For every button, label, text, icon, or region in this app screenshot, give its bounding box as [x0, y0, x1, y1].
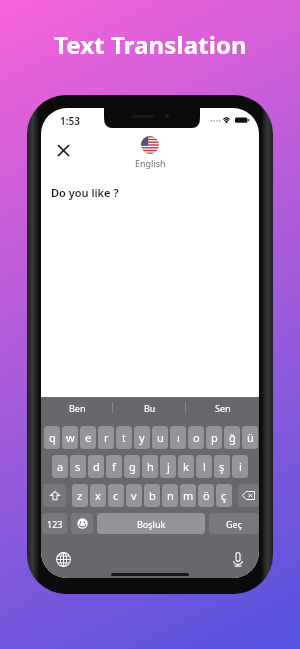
button[interactable]: ü [242, 426, 258, 449]
button[interactable]: k [178, 455, 194, 478]
button[interactable]: Backspace [238, 484, 259, 507]
button[interactable]: ş [214, 455, 230, 478]
staticText: j [167, 459, 170, 474]
staticText: a [57, 459, 64, 474]
staticText: d [93, 459, 100, 474]
button[interactable]: Geç [209, 513, 259, 534]
button[interactable]: v [126, 484, 142, 507]
staticText: c [113, 488, 119, 503]
button[interactable]: Sen [186, 397, 259, 418]
button[interactable]: c [108, 484, 124, 507]
button[interactable]: x [90, 484, 106, 507]
staticText: ş [219, 459, 225, 474]
button[interactable]: Change language [54, 551, 72, 567]
staticText: Geç [226, 518, 242, 530]
staticText: o [193, 430, 200, 445]
button[interactable]: p [206, 426, 222, 449]
staticText: n [167, 488, 174, 503]
staticText: ö [203, 488, 210, 503]
button[interactable]: Emoji [71, 513, 93, 534]
button[interactable]: g [124, 455, 140, 478]
button[interactable]: ö [198, 484, 214, 507]
button[interactable]: l [196, 455, 212, 478]
staticText: Bu [144, 402, 156, 414]
staticText: z [77, 488, 83, 503]
staticText: 1:53 [60, 114, 80, 128]
button[interactable]: Voice input [229, 551, 247, 567]
button[interactable]: h [142, 455, 158, 478]
button[interactable]: ç [216, 484, 232, 507]
staticText: h [147, 459, 154, 474]
staticText: q [49, 430, 56, 445]
staticText: Sen [215, 402, 231, 414]
button[interactable]: Shift [43, 484, 66, 507]
button[interactable]: Close [50, 137, 76, 163]
button[interactable]: f [106, 455, 122, 478]
button[interactable]: Ben [41, 397, 113, 418]
button[interactable]: ı [170, 426, 186, 449]
staticText: Text Translation [54, 28, 247, 61]
staticText: Boşluk [137, 518, 166, 530]
button[interactable]: n [162, 484, 178, 507]
button[interactable]: b [144, 484, 160, 507]
button[interactable]: Boşluk [97, 513, 205, 534]
staticText: u [157, 430, 164, 445]
button[interactable]: d [88, 455, 104, 478]
button[interactable]: z [72, 484, 88, 507]
button[interactable]: o [188, 426, 204, 449]
button[interactable]: r [98, 426, 114, 449]
button[interactable]: u [152, 426, 168, 449]
staticText: l [203, 459, 206, 474]
staticText: ı [177, 430, 180, 445]
staticText: t [122, 430, 126, 445]
staticText: ğ [229, 430, 236, 445]
staticText: Do you like ? [51, 185, 119, 200]
staticText: p [211, 430, 218, 445]
button[interactable]: e [80, 426, 96, 449]
staticText: r [104, 430, 109, 445]
staticText: w [66, 430, 75, 445]
staticText: g [129, 459, 136, 474]
staticText: ü [247, 430, 254, 445]
staticText: 123 [47, 518, 63, 530]
button[interactable]: t [116, 426, 132, 449]
staticText: Ben [69, 402, 86, 414]
button[interactable]: 123 [42, 513, 67, 534]
button[interactable]: Bu [113, 397, 186, 418]
staticText: y [139, 430, 145, 445]
staticText: k [183, 459, 189, 474]
staticText: English [135, 157, 166, 169]
button[interactable]: a [52, 455, 68, 478]
staticText: e [85, 430, 92, 445]
button[interactable]: ğ [224, 426, 240, 449]
button[interactable]: q [44, 426, 60, 449]
staticText: i [239, 459, 242, 474]
staticText: v [131, 488, 137, 503]
staticText: ç [221, 488, 227, 503]
button[interactable]: w [62, 426, 78, 449]
button[interactable]: y [134, 426, 150, 449]
button[interactable]: m [180, 484, 196, 507]
button[interactable]: English [41, 136, 259, 169]
staticText: b [149, 488, 156, 503]
staticText: f [112, 459, 116, 474]
button[interactable]: i [232, 455, 248, 478]
staticText: s [75, 459, 81, 474]
staticText: m [183, 488, 194, 503]
button[interactable]: s [70, 455, 86, 478]
staticText: x [95, 488, 101, 503]
button[interactable]: j [160, 455, 176, 478]
